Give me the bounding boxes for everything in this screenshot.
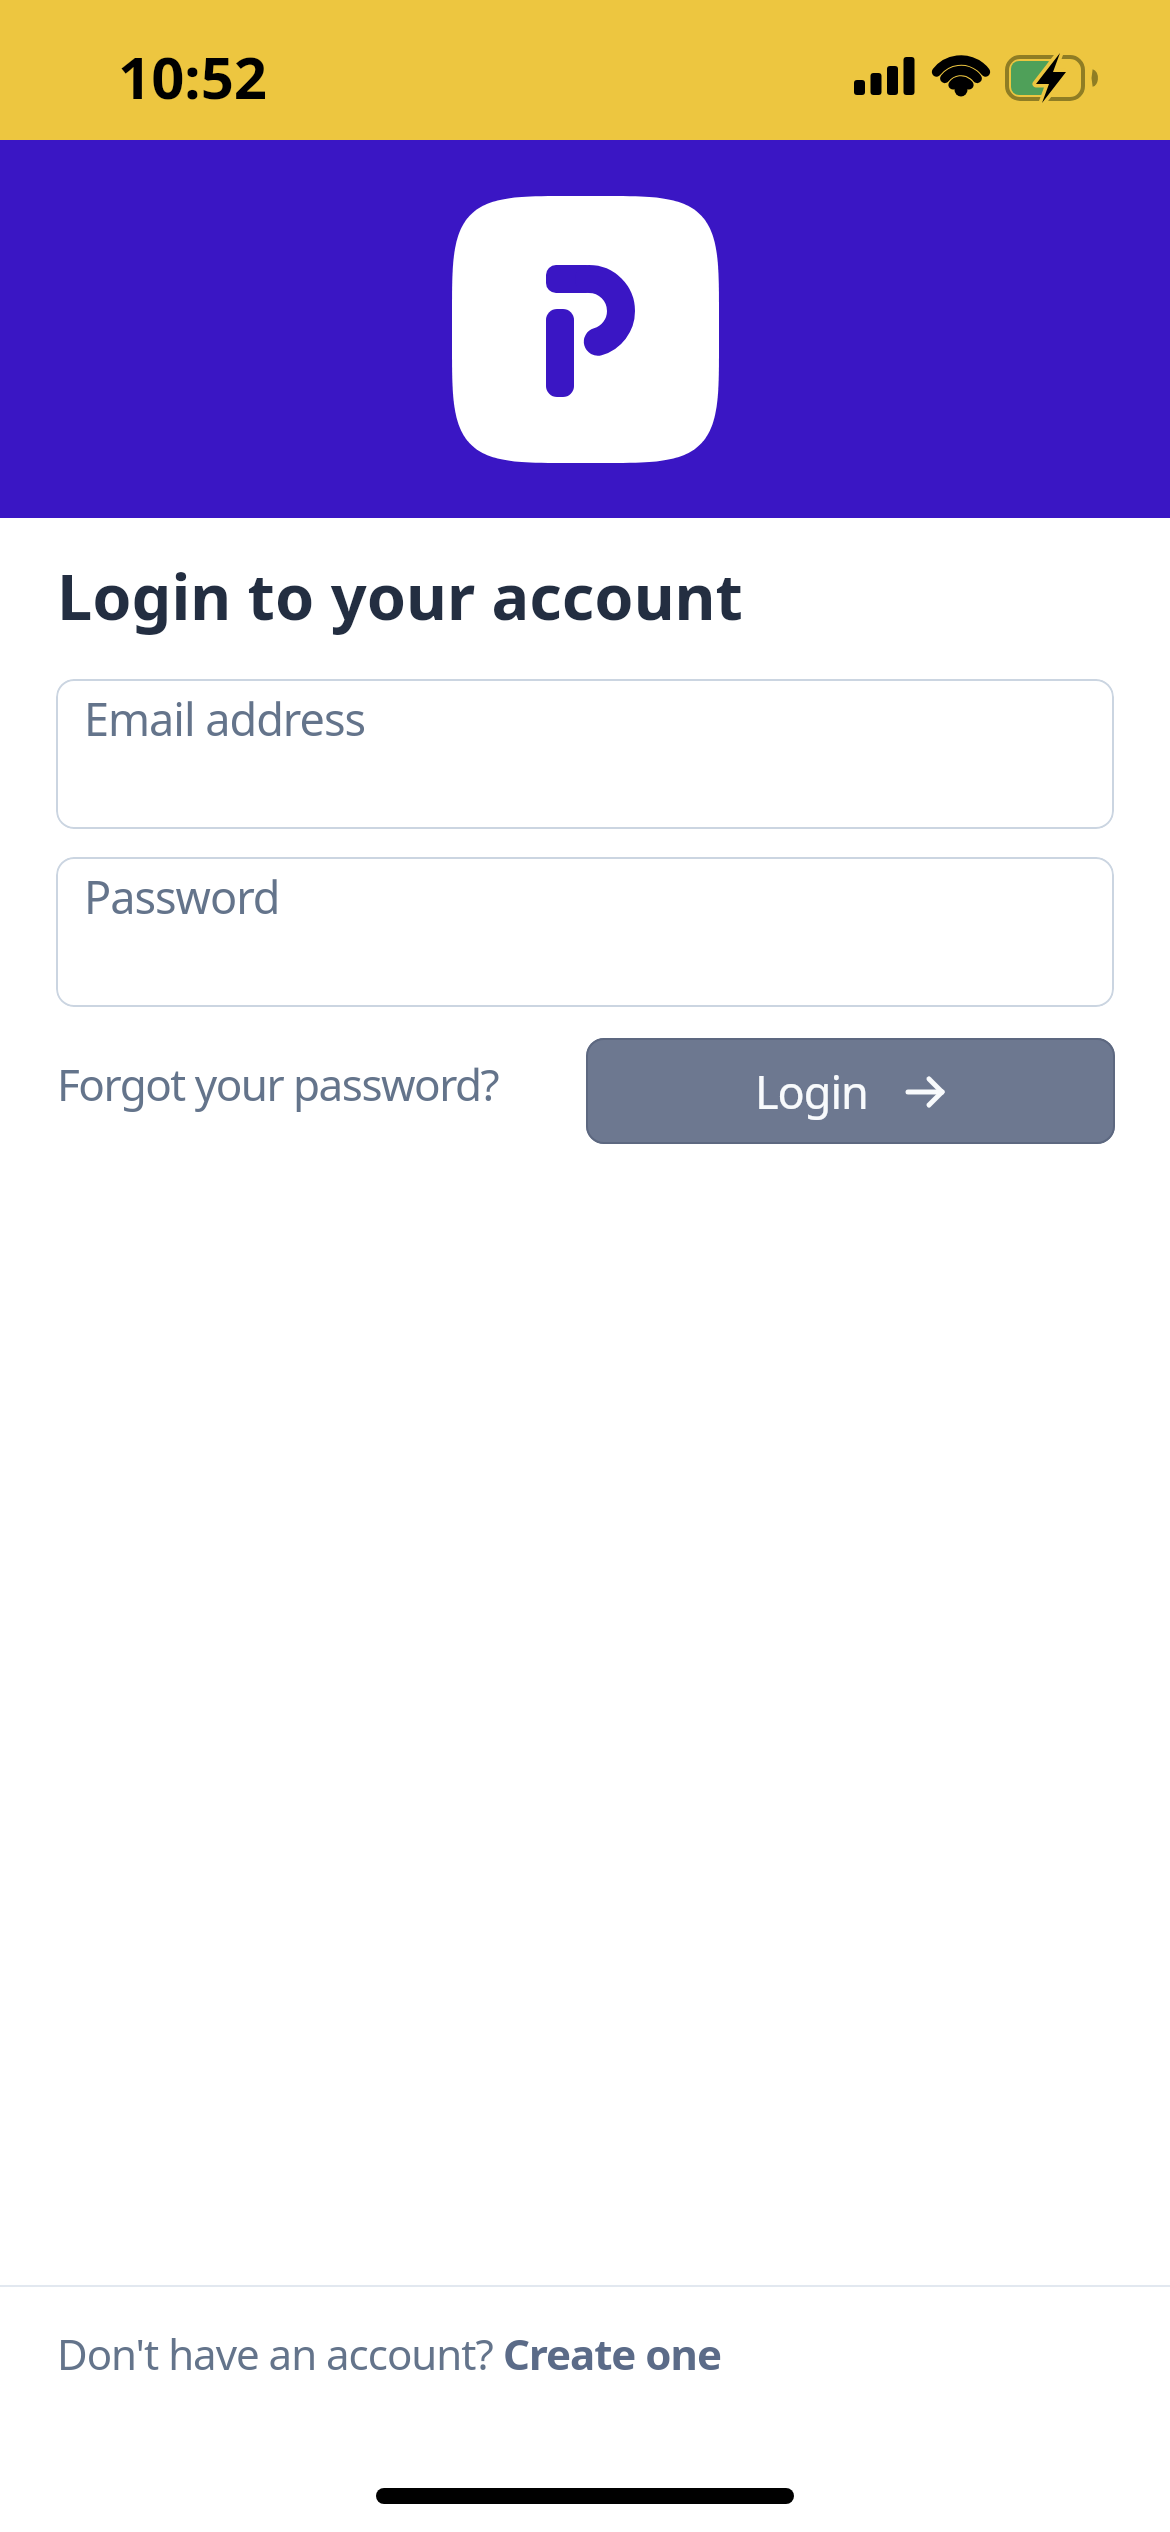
button[interactable]: Forgot your password? bbox=[57, 1054, 499, 1114]
staticText: 10:52 bbox=[118, 37, 268, 116]
staticText: Login bbox=[755, 1061, 868, 1122]
staticText: Email address bbox=[84, 688, 366, 749]
staticText: Create one bbox=[503, 2325, 721, 2382]
staticText: Login to your account bbox=[57, 553, 743, 639]
button[interactable]: Email address bbox=[56, 679, 1114, 829]
button[interactable]: Create one bbox=[503, 2325, 721, 2382]
staticText: Password bbox=[84, 866, 280, 927]
button[interactable]: Login bbox=[586, 1038, 1115, 1144]
button[interactable]: Password bbox=[56, 857, 1114, 1007]
staticText: Don't have an account? bbox=[57, 2325, 503, 2382]
staticText: Forgot your password? bbox=[57, 1054, 499, 1114]
